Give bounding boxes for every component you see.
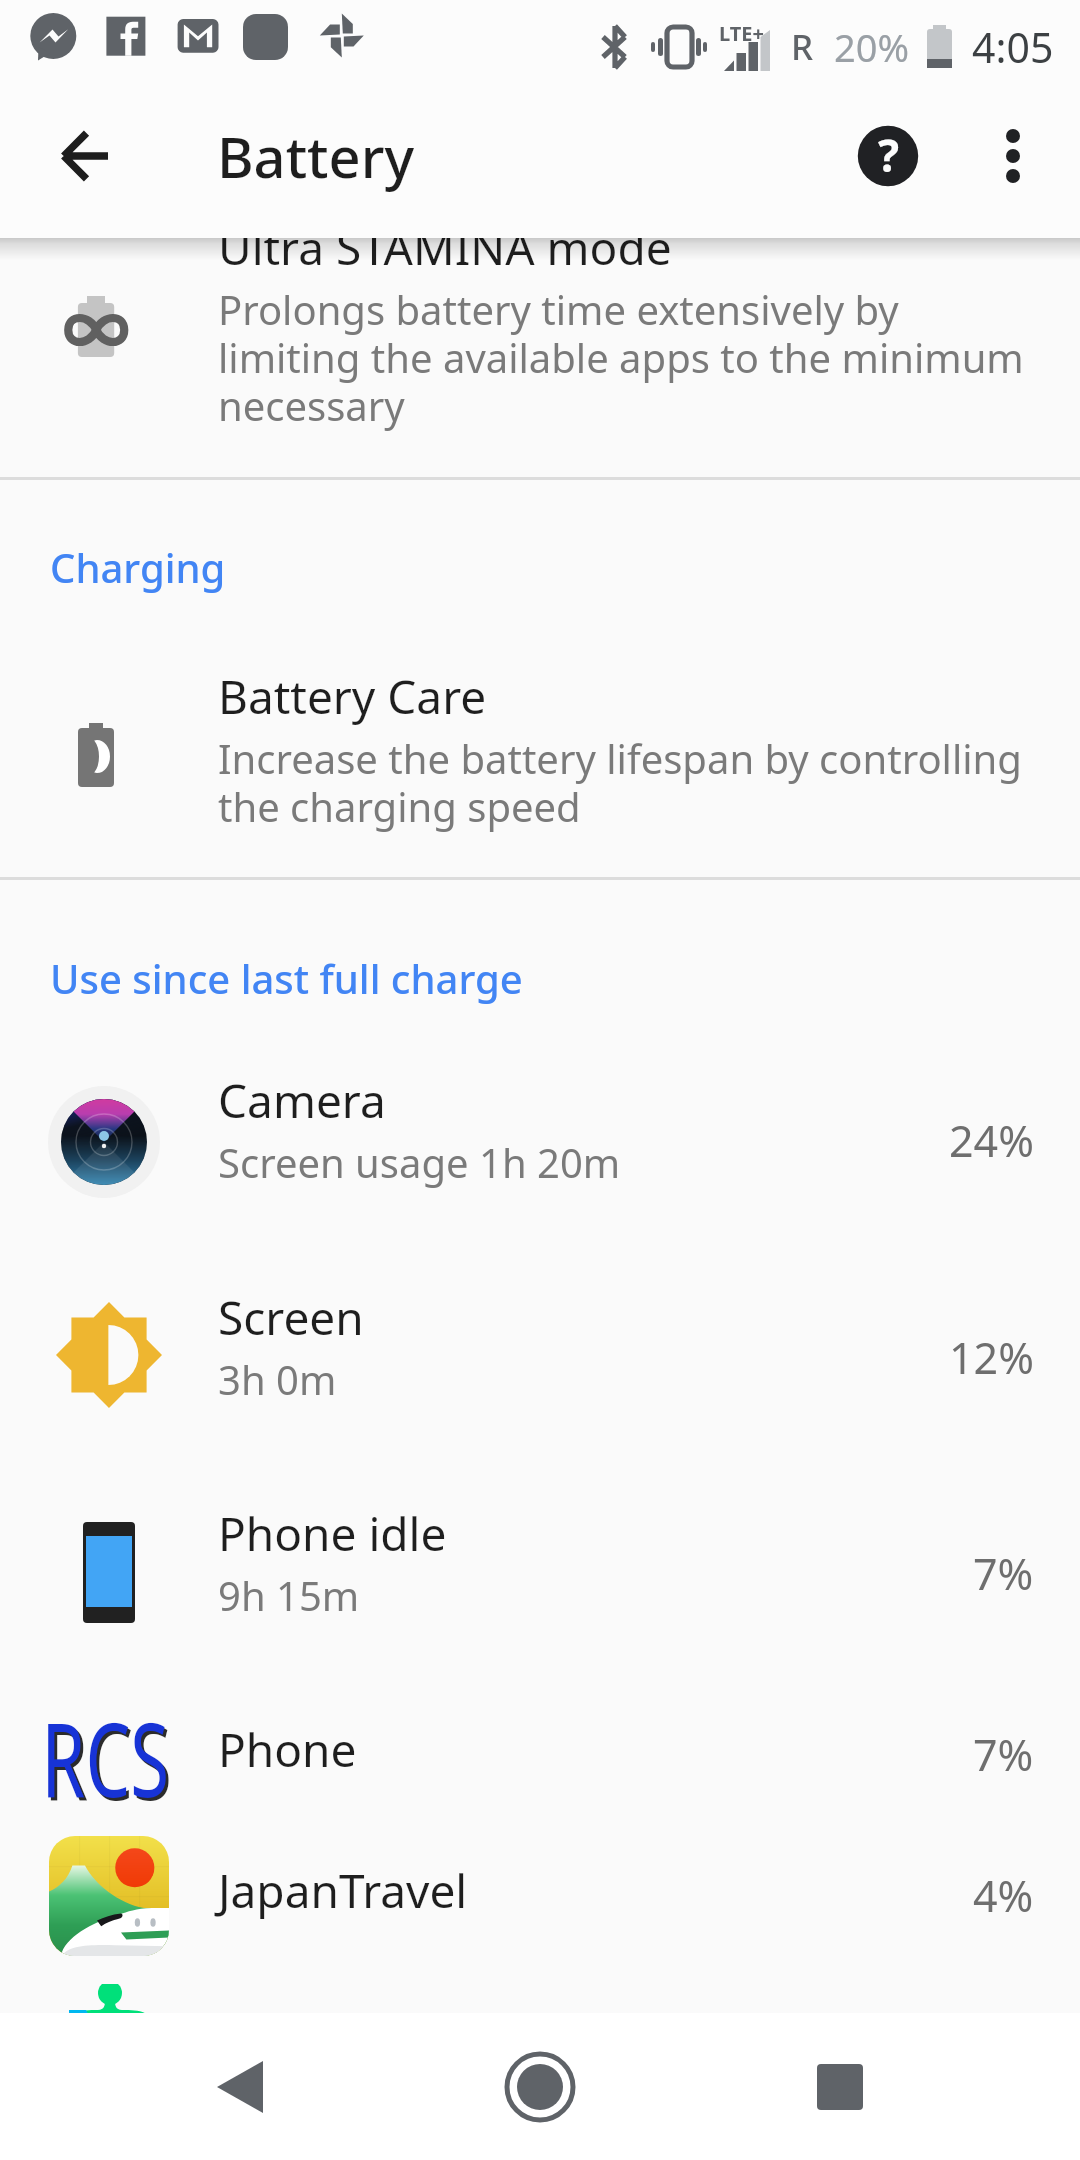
button[interactable]: Help <box>833 100 943 212</box>
staticText: RCS <box>44 1690 172 1830</box>
staticText: Phone <box>218 1718 357 1781</box>
button[interactable]: Screen <box>0 1244 1080 1460</box>
button[interactable]: Back <box>29 100 139 212</box>
staticText: Ultra STAMINA mode <box>218 216 672 279</box>
staticText: Screen usage 1h 20m <box>218 1135 621 1189</box>
staticText: JapanTravel <box>218 1859 468 1922</box>
staticText: R <box>791 23 814 71</box>
button[interactable]: JapanTravel <box>0 1820 1080 1960</box>
staticText: 7% <box>973 1544 1034 1603</box>
staticText: Screen <box>218 1286 364 1349</box>
staticText: Increase the battery lifespan by control… <box>218 731 1048 833</box>
staticText: 24% <box>949 1111 1034 1170</box>
button[interactable]: Recent apps <box>600 2013 1080 2160</box>
staticText: Camera <box>218 1069 386 1132</box>
button[interactable]: Battery Care <box>0 623 1080 843</box>
staticText: 9h 15m <box>218 1568 360 1622</box>
button[interactable]: Phone idle <box>0 1460 1080 1676</box>
staticText: Phone idle <box>218 1502 447 1565</box>
staticText: ? <box>878 125 899 185</box>
button[interactable]: Back <box>0 2013 480 2160</box>
button[interactable]: Camera <box>0 1027 1080 1243</box>
staticText: Battery <box>217 118 414 194</box>
staticText: 12% <box>949 1328 1034 1387</box>
staticText: Battery Care <box>218 665 487 728</box>
staticText: Prolongs battery time extensively by lim… <box>218 282 1048 432</box>
staticText: 3h 0m <box>218 1352 337 1406</box>
staticText: 4% <box>973 1866 1034 1925</box>
button[interactable]: RCS <box>0 1679 1080 1819</box>
staticText: LTE+ <box>719 20 764 47</box>
staticText: 7% <box>973 1725 1034 1784</box>
button[interactable]: More options <box>958 100 1068 212</box>
staticText: Charging <box>50 540 226 594</box>
staticText: RCS <box>41 1687 169 1827</box>
button[interactable]: Home <box>480 2013 600 2160</box>
staticText: 20% <box>834 21 910 73</box>
staticText: 4:05 <box>972 19 1054 75</box>
staticText: Use since last full charge <box>50 951 523 1005</box>
button[interactable]: Ultra STAMINA mode <box>0 150 1080 470</box>
